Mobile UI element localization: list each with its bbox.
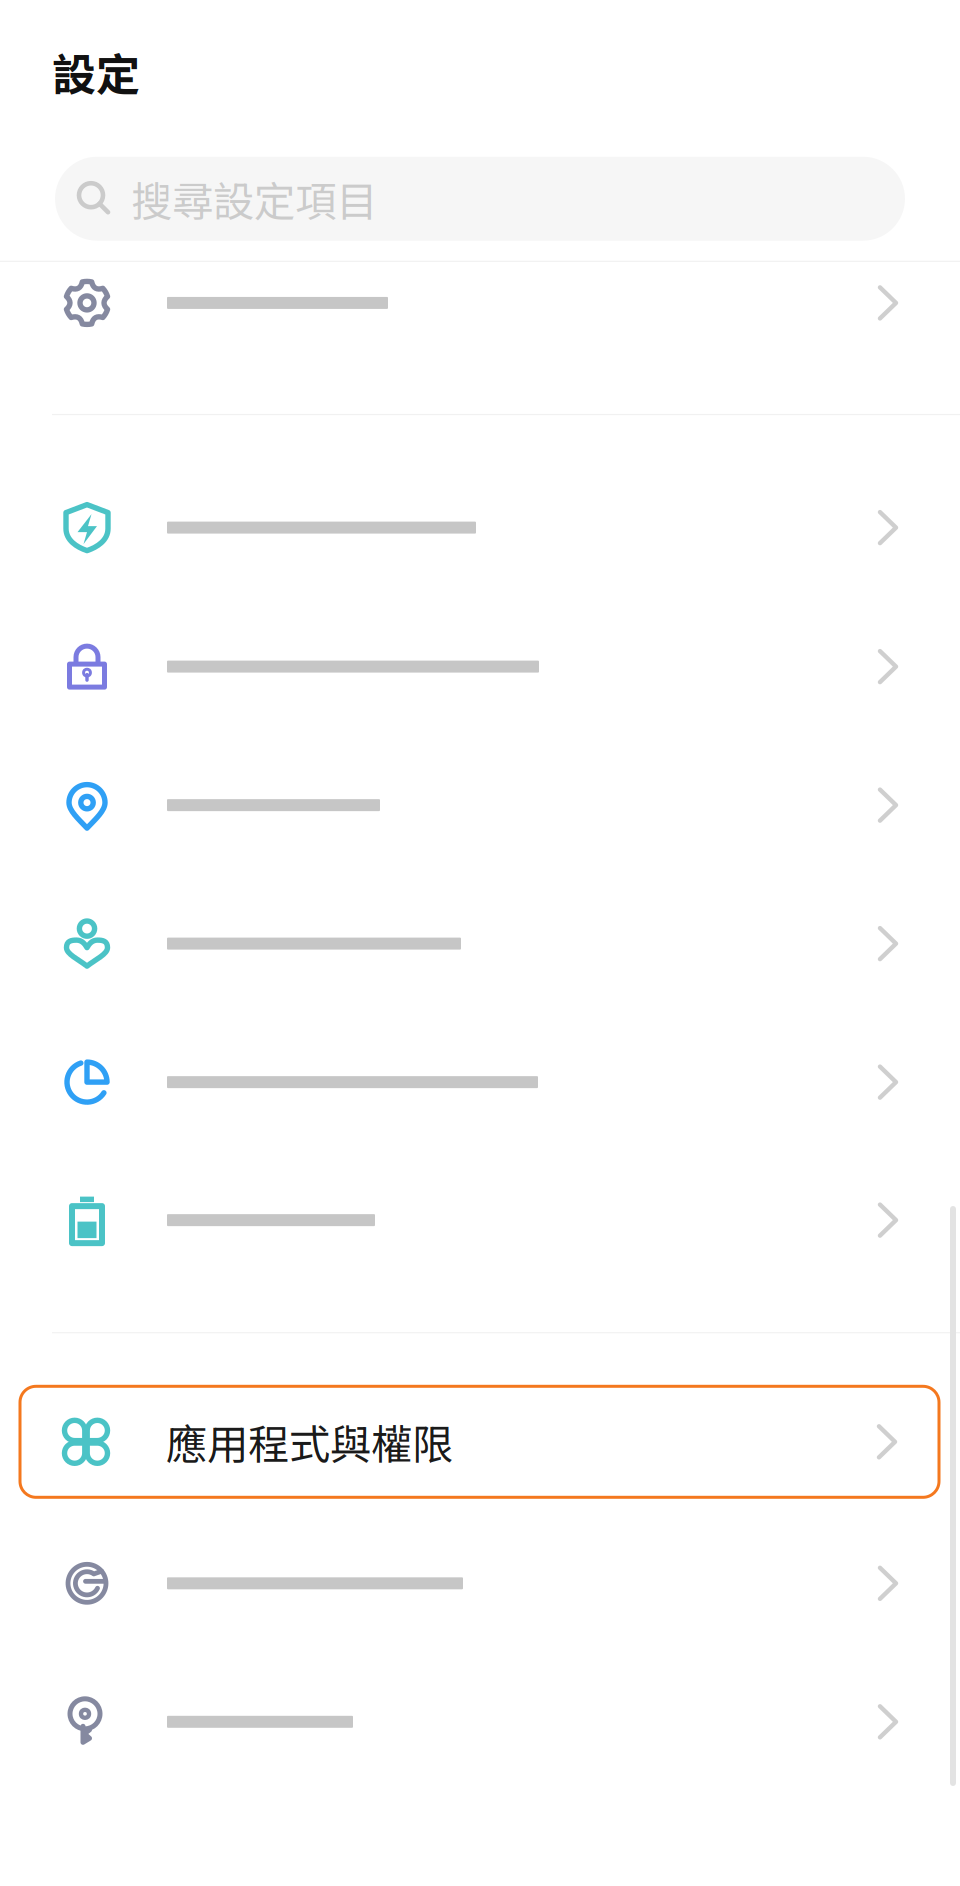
staticText: 搜尋設定項目: [131, 169, 377, 229]
button[interactable]: Settings item: [0, 1514, 960, 1652]
button[interactable]: 搜尋設定項目: [55, 157, 905, 241]
button[interactable]: Settings item: [0, 874, 960, 1013]
button[interactable]: 應用程式與權限: [20, 1386, 939, 1497]
button[interactable]: Settings item: [0, 1151, 960, 1289]
staticText: 應用程式與權限: [166, 1412, 453, 1472]
button[interactable]: Settings item: [0, 1652, 960, 1791]
button[interactable]: Settings item: [0, 262, 960, 344]
button[interactable]: Settings item: [0, 1013, 960, 1151]
staticText: 設定: [52, 40, 140, 104]
button[interactable]: Settings item: [0, 736, 960, 874]
button[interactable]: Settings item: [0, 458, 960, 597]
button[interactable]: Settings item: [0, 597, 960, 736]
